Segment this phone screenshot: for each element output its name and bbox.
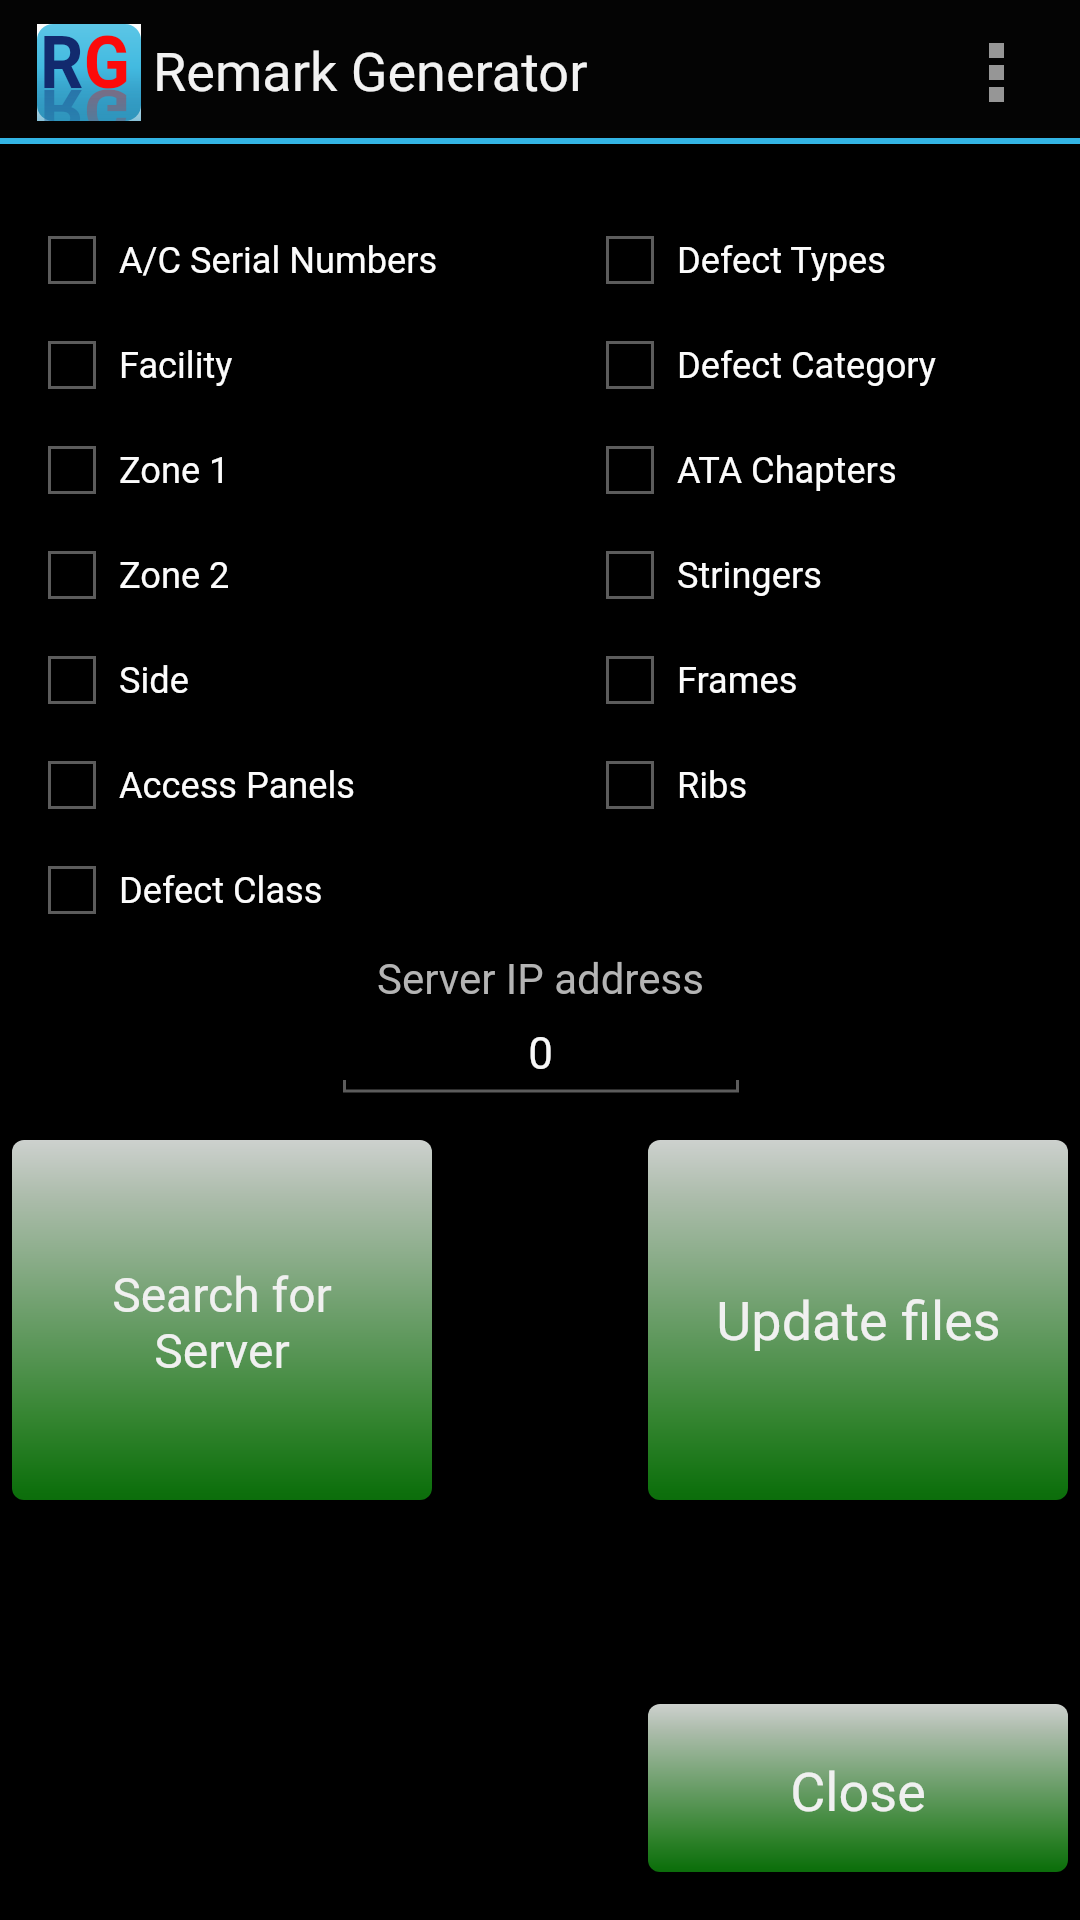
button[interactable]: Ribs: [606, 745, 748, 825]
staticText: A/C Serial Numbers: [119, 239, 438, 281]
staticText: Search for Server: [112, 1267, 332, 1379]
button[interactable]: Frames: [606, 640, 798, 720]
staticText: R: [40, 24, 84, 106]
staticText: Frames: [677, 659, 798, 701]
staticText: ATA Chapters: [677, 449, 897, 491]
staticText: Access Panels: [119, 764, 355, 806]
button[interactable]: Stringers: [606, 535, 822, 615]
staticText: Close: [790, 1761, 926, 1824]
staticText: Remark Generator: [153, 41, 588, 104]
staticText: Zone 1: [119, 449, 230, 491]
button[interactable]: A/C Serial Numbers: [48, 220, 438, 300]
button[interactable]: Defect Class: [48, 850, 323, 930]
button[interactable]: Update files: [648, 1140, 1068, 1500]
button[interactable]: Zone 2: [48, 535, 230, 615]
button[interactable]: ATA Chapters: [606, 430, 897, 510]
staticText: R: [40, 76, 84, 121]
staticText: G: [84, 76, 130, 121]
staticText: Update files: [716, 1290, 1001, 1353]
staticText: Zone 2: [119, 554, 230, 596]
button[interactable]: Facility: [48, 325, 233, 405]
button[interactable]: More options: [956, 17, 1036, 127]
staticText: 0: [528, 1028, 553, 1080]
button[interactable]: Defect Category: [606, 325, 936, 405]
staticText: Ribs: [677, 764, 748, 806]
button[interactable]: Search for Server: [12, 1140, 432, 1500]
staticText: Stringers: [677, 554, 822, 596]
staticText: Defect Category: [677, 344, 936, 386]
staticText: G: [84, 24, 130, 106]
staticText: Server IP address: [377, 955, 704, 1004]
staticText: Defect Types: [677, 239, 886, 281]
button[interactable]: Defect Types: [606, 220, 886, 300]
button[interactable]: Side: [48, 640, 189, 720]
staticText: Defect Class: [119, 869, 323, 911]
button[interactable]: Zone 1: [48, 430, 230, 510]
staticText: Facility: [119, 344, 233, 386]
button[interactable]: Access Panels: [48, 745, 355, 825]
staticText: Side: [119, 659, 189, 701]
button[interactable]: Close: [648, 1704, 1068, 1872]
